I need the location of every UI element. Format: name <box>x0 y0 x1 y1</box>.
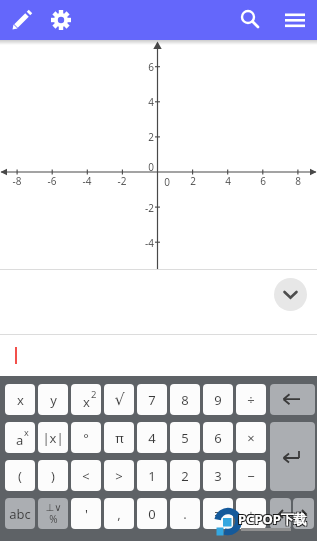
staticText: ° <box>83 429 89 447</box>
button[interactable]: 3 <box>203 460 233 491</box>
staticText: -2 <box>110 174 134 188</box>
staticText: 0 <box>130 160 154 174</box>
staticText: 2 <box>91 388 97 401</box>
button[interactable] <box>236 5 264 33</box>
staticText: ' <box>85 505 88 523</box>
staticText: 6 <box>214 429 222 447</box>
staticText: -6 <box>40 174 64 188</box>
staticText: + <box>247 505 255 523</box>
button[interactable]: ° <box>71 422 101 453</box>
staticText: √ <box>114 390 125 409</box>
button[interactable]: + <box>236 498 266 529</box>
staticText: 8 <box>181 391 189 409</box>
button[interactable]: 9 <box>203 384 233 415</box>
staticText: PCPOP下载 <box>237 509 317 527</box>
staticText: ÷ <box>247 391 255 409</box>
button[interactable]: ( <box>5 460 35 491</box>
staticText: 2 <box>181 467 189 485</box>
staticText: 0 <box>148 505 156 523</box>
staticText: 5 <box>181 429 189 447</box>
button[interactable]: ) <box>38 460 68 491</box>
button[interactable]: x <box>5 384 35 415</box>
staticText: y <box>50 391 57 409</box>
staticText: |x| <box>42 429 64 447</box>
staticText: x <box>17 391 24 409</box>
staticText: -4 <box>75 174 99 188</box>
staticText: 9 <box>214 391 222 409</box>
staticText: = <box>214 505 222 523</box>
staticText: < <box>82 467 90 485</box>
button[interactable]: √ <box>104 384 134 415</box>
button[interactable]: > <box>104 460 134 491</box>
button[interactable] <box>270 498 291 529</box>
button[interactable] <box>38 498 68 529</box>
button[interactable] <box>0 335 317 376</box>
button[interactable]: < <box>71 460 101 491</box>
button[interactable]: y <box>38 384 68 415</box>
staticText: 7 <box>148 391 156 409</box>
button[interactable]: 1 <box>137 460 167 491</box>
staticText: 4 <box>148 429 156 447</box>
button[interactable]: 7 <box>137 384 167 415</box>
button[interactable]: π <box>104 422 134 453</box>
button[interactable]: . <box>170 498 200 529</box>
staticText: x <box>83 393 90 411</box>
staticText: -8 <box>5 174 29 188</box>
button[interactable]: × <box>236 422 266 453</box>
button[interactable] <box>293 498 314 529</box>
staticText: a <box>16 431 24 449</box>
staticText: 4 <box>216 174 240 188</box>
button[interactable] <box>48 6 74 32</box>
button[interactable]: 6 <box>203 422 233 453</box>
button[interactable]: 2 <box>170 460 200 491</box>
staticText: 0 <box>161 175 173 189</box>
button[interactable]: x <box>71 384 101 415</box>
staticText: π <box>115 429 124 447</box>
button[interactable]: 8 <box>170 384 200 415</box>
staticText: , <box>117 505 121 523</box>
staticText: × <box>247 429 255 447</box>
button[interactable]: a <box>5 422 35 453</box>
button[interactable]: 0 <box>137 498 167 529</box>
staticText: 4 <box>130 95 154 109</box>
staticText: PCPOP下载 <box>239 509 317 527</box>
staticText: ) <box>51 467 55 485</box>
button[interactable]: ÷ <box>236 384 266 415</box>
button[interactable]: , <box>104 498 134 529</box>
staticText: > <box>115 467 123 485</box>
button[interactable] <box>274 278 307 311</box>
button[interactable]: ' <box>71 498 101 529</box>
staticText: -2 <box>130 201 154 215</box>
button[interactable]: 5 <box>170 422 200 453</box>
staticText: ⊥∨ % <box>45 502 62 526</box>
staticText: abc <box>9 505 31 523</box>
button[interactable]: abc <box>5 498 35 529</box>
staticText: 3 <box>214 467 222 485</box>
staticText: ( <box>18 467 22 485</box>
button[interactable] <box>270 384 315 415</box>
staticText: x <box>24 426 29 438</box>
button[interactable]: − <box>236 460 266 491</box>
button[interactable]: = <box>203 498 233 529</box>
button[interactable]: 4 <box>137 422 167 453</box>
button[interactable] <box>283 7 309 33</box>
staticText: 2 <box>130 130 154 144</box>
staticText: PCPOP下载 <box>238 510 317 528</box>
staticText: -4 <box>130 236 154 250</box>
staticText: 2 <box>181 174 205 188</box>
staticText: PCPOP下载 <box>237 511 317 529</box>
staticText: 6 <box>130 60 154 74</box>
staticText: − <box>247 467 255 485</box>
staticText: 8 <box>286 174 310 188</box>
staticText: . <box>183 505 187 523</box>
button[interactable]: |x| <box>38 422 68 453</box>
staticText: 6 <box>251 174 275 188</box>
button[interactable] <box>270 422 315 491</box>
staticText: 1 <box>148 467 156 485</box>
staticText: PCPOP下载 <box>239 511 317 529</box>
button[interactable] <box>8 6 34 32</box>
